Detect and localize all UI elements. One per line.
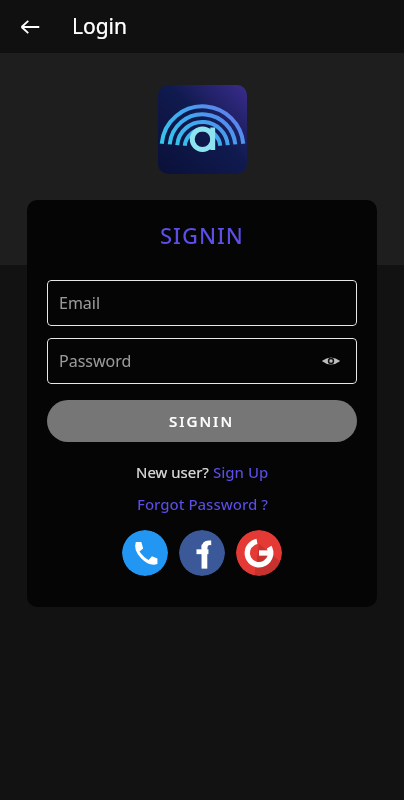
staticText: SIGNIN: [169, 411, 235, 431]
staticText: SIGNIN: [160, 220, 244, 250]
button[interactable]: Sign in with phone: [122, 530, 168, 576]
button[interactable]: SIGNIN: [47, 400, 357, 442]
button[interactable]: Password: [47, 338, 357, 384]
staticText: Password: [59, 350, 132, 372]
button[interactable]: Sign in with Google: [236, 530, 282, 576]
staticText: Email: [59, 292, 101, 314]
button[interactable]: Forgot Password ?: [137, 494, 268, 514]
button[interactable]: Email: [47, 280, 357, 326]
button[interactable]: Show password: [317, 347, 345, 375]
staticText: New user?: [136, 462, 213, 482]
staticText: Login: [72, 12, 128, 41]
button[interactable]: Sign Up: [213, 462, 269, 482]
staticText: Sign Up: [213, 462, 269, 482]
button[interactable]: Sign in with Facebook: [179, 530, 225, 576]
staticText: Forgot Password ?: [137, 494, 268, 514]
button[interactable]: Back: [10, 7, 50, 47]
